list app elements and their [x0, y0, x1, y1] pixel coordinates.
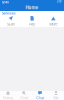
staticText: Home [3, 96, 13, 100]
staticText: 9:41 [2, 0, 9, 4]
button[interactable]: Me [48, 91, 64, 100]
staticText: Chat [36, 96, 44, 100]
staticText: Scan [7, 22, 15, 26]
staticText: Services [1, 11, 15, 15]
staticText: Me [53, 96, 58, 100]
staticText: More [49, 22, 57, 26]
button[interactable]: More [43, 16, 64, 26]
staticText: Pay [29, 22, 35, 26]
staticText: Find [20, 96, 27, 100]
button[interactable]: Scan [0, 16, 21, 26]
button[interactable]: Find [16, 91, 32, 100]
button[interactable]: Chat [32, 91, 48, 100]
staticText: LTE [57, 0, 62, 4]
button[interactable]: Pay [21, 16, 43, 26]
button[interactable]: Home [0, 91, 16, 100]
staticText: Home [25, 5, 38, 10]
